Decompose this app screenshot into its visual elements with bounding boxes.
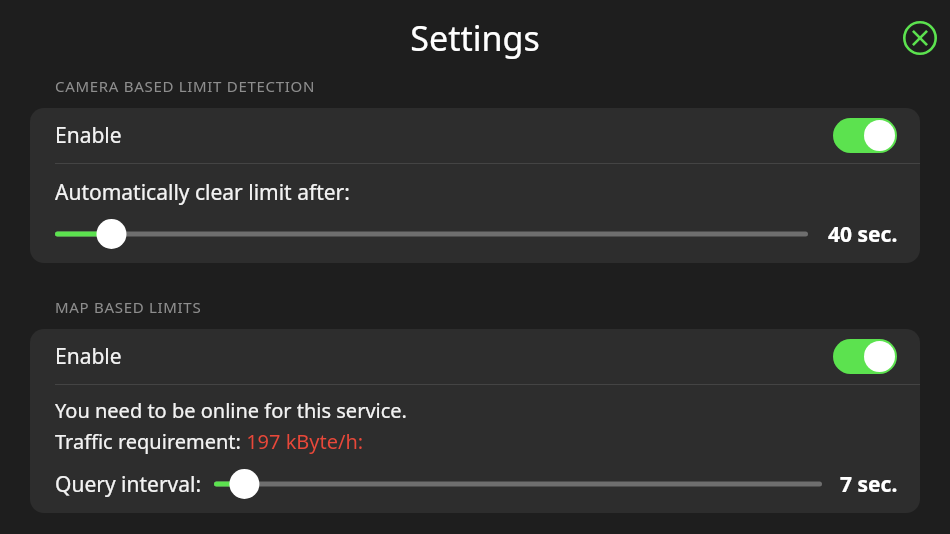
staticText: 7 sec. — [840, 470, 898, 499]
staticText: Query interval: — [55, 470, 202, 499]
button[interactable]: Enable toggle — [833, 339, 897, 374]
staticText: You need to be online for this service. — [55, 397, 407, 424]
button[interactable]: Slider — [214, 469, 822, 499]
button[interactable]: Enable toggle — [833, 118, 897, 153]
staticText: Enable — [55, 342, 122, 371]
staticText: Settings — [410, 15, 540, 61]
staticText: MAP BASED LIMITS — [55, 297, 202, 317]
staticText: Enable — [55, 121, 122, 150]
button[interactable]: Slider — [55, 219, 808, 249]
button[interactable]: Enable — [30, 329, 920, 384]
staticText: 40 sec. — [828, 220, 898, 249]
button[interactable]: Close settings — [898, 16, 942, 60]
staticText: Automatically clear limit after: — [55, 178, 350, 207]
staticText: CAMERA BASED LIMIT DETECTION — [55, 76, 316, 96]
staticText: Traffic requirement: 197 kByte/h: — [55, 428, 364, 455]
button[interactable]: Enable — [30, 108, 920, 163]
